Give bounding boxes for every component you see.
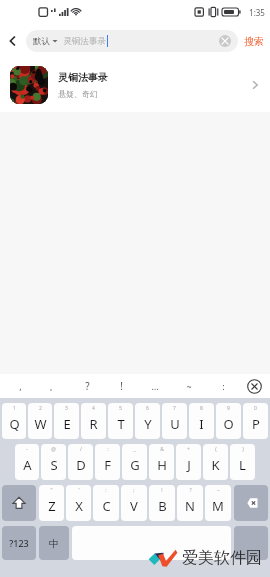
button[interactable]: ~ (172, 374, 206, 398)
button[interactable]: : (206, 374, 240, 398)
button[interactable]: 1 (2, 403, 26, 439)
staticText: 3 (65, 405, 68, 412)
staticText: & (160, 446, 164, 453)
button[interactable]: ' (66, 485, 91, 521)
button[interactable]: : (95, 444, 120, 480)
staticText: O (223, 415, 234, 433)
button[interactable]: 9 (216, 403, 241, 439)
staticText: G (130, 456, 140, 474)
staticText: ?123 (9, 537, 29, 549)
button[interactable]: @ (41, 444, 66, 480)
button[interactable]: 。 (37, 374, 70, 398)
button[interactable]: _ (122, 444, 147, 480)
staticText: X (75, 497, 83, 515)
staticText: 8 (200, 405, 203, 412)
button[interactable]: + (176, 444, 201, 480)
staticText: T (117, 415, 125, 433)
button[interactable]: 4 (81, 403, 106, 439)
button[interactable]: Enter (234, 526, 268, 560)
staticText: U (170, 415, 180, 433)
staticText: N (185, 497, 195, 515)
staticText: A (23, 456, 32, 474)
button[interactable]: Close keyboard (247, 379, 262, 394)
button[interactable]: 灵铜法事录 (0, 58, 270, 112)
button[interactable]: 7 (162, 403, 187, 439)
staticText: 悬疑、奇幻 (58, 89, 98, 99)
button[interactable]: ! (104, 374, 138, 398)
button[interactable]: / (68, 444, 93, 480)
button[interactable]: Back (0, 24, 26, 58)
staticText: 1:35 (249, 7, 265, 18)
button[interactable]: ) (230, 444, 255, 480)
staticText: Q (9, 415, 20, 433)
staticText: L (239, 456, 246, 474)
button[interactable]: , (4, 374, 37, 398)
staticText: 7 (173, 405, 176, 412)
staticText: + (187, 446, 190, 453)
button[interactable]: ? (70, 374, 104, 398)
staticText: " (50, 487, 53, 494)
staticText: 爱美软件园 (182, 548, 262, 568)
staticText: ! (161, 487, 163, 494)
staticText: ? (85, 379, 90, 393)
button[interactable]: 5 (108, 403, 133, 439)
staticText: 中 (49, 537, 59, 550)
staticText: D (76, 456, 86, 474)
staticText: 灵铜法事录 (63, 36, 106, 47)
button[interactable]: 3 (54, 403, 79, 439)
button[interactable]: ! (149, 485, 175, 521)
button[interactable]: 默认 (26, 30, 238, 52)
staticText: ? (189, 487, 192, 494)
staticText: : (105, 487, 107, 494)
staticText: I (199, 415, 204, 433)
staticText: 6 (146, 405, 149, 412)
staticText: … (151, 380, 159, 392)
button[interactable]: & (149, 444, 174, 480)
button[interactable]: ?123 (2, 526, 36, 560)
button[interactable]: Clear (219, 35, 231, 47)
staticText: B (158, 497, 167, 515)
button[interactable]: Space (72, 526, 231, 560)
button[interactable]: 8 (189, 403, 214, 439)
staticText: C (102, 497, 111, 515)
staticText: P (252, 415, 260, 433)
staticText: : (107, 446, 109, 453)
staticText: : (222, 380, 225, 392)
button[interactable]: ; (121, 485, 147, 521)
button[interactable]: 0 (243, 403, 268, 439)
staticText: , (19, 380, 22, 392)
staticText: 9 (227, 405, 230, 412)
staticText: ~ (217, 487, 220, 494)
staticText: W (34, 415, 47, 433)
staticText: E (63, 415, 71, 433)
staticText: ( (215, 446, 217, 453)
staticText: K (211, 456, 220, 474)
button[interactable]: 中 (39, 526, 69, 560)
staticText: 5 (119, 405, 122, 412)
staticText: H (157, 456, 167, 474)
button[interactable]: : (93, 485, 119, 521)
button[interactable]: Delete (234, 485, 268, 521)
staticText: 0 (254, 405, 257, 412)
button[interactable]: ( (203, 444, 228, 480)
button[interactable]: 2 (28, 403, 52, 439)
button[interactable]: " (39, 485, 64, 521)
staticText: S (50, 456, 58, 474)
staticText: 。 (49, 381, 58, 392)
staticText: 4 (92, 405, 95, 412)
staticText: 灵铜法事录 (58, 71, 108, 84)
button[interactable]: … (138, 374, 172, 398)
button[interactable]: 搜索 (244, 35, 264, 48)
staticText: ! (120, 379, 123, 393)
staticText: V (130, 497, 138, 515)
button[interactable]: ? (177, 485, 203, 521)
staticText: ' (78, 487, 80, 494)
button[interactable]: Shift (2, 485, 36, 521)
button[interactable]: ~ (205, 485, 231, 521)
staticText: 默认 (33, 36, 50, 47)
staticText: ; (133, 487, 135, 494)
staticText: ~ (186, 380, 192, 392)
staticText: 1 (13, 405, 16, 412)
button[interactable]: 6 (135, 403, 160, 439)
button[interactable]: - (15, 444, 39, 480)
